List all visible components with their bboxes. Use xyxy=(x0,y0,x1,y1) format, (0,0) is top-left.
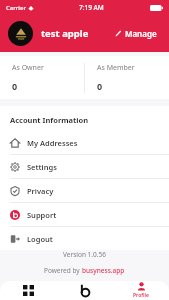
staticText: Support xyxy=(27,210,57,220)
staticText: 0 xyxy=(97,80,103,92)
button[interactable]: Dashboard xyxy=(0,281,57,300)
staticText: As Owner xyxy=(12,63,44,73)
button[interactable]: Support xyxy=(0,203,169,226)
staticText: 7:19 AM xyxy=(79,3,104,12)
button[interactable]: As Owner xyxy=(0,56,84,99)
staticText: Version 1.0.56 xyxy=(63,250,106,259)
staticText: Carrier xyxy=(6,4,26,12)
staticText: Privacy xyxy=(27,186,54,196)
staticText: Account Information xyxy=(10,115,89,125)
staticText: Settings xyxy=(27,162,57,172)
staticText: Profile xyxy=(133,292,149,299)
button[interactable]: Home xyxy=(57,281,113,300)
staticText: As Member xyxy=(97,63,135,73)
staticText: 0 xyxy=(12,80,18,92)
button[interactable]: My Addresses xyxy=(0,131,169,154)
staticText: Logout xyxy=(27,234,53,244)
button[interactable]: busyness.app xyxy=(82,266,125,275)
button[interactable]: Privacy xyxy=(0,179,169,202)
staticText: test apple xyxy=(41,27,89,40)
staticText: My Addresses xyxy=(27,138,78,148)
button[interactable]: Profile xyxy=(113,281,169,300)
staticText: Manage xyxy=(125,28,157,39)
staticText: busyness.app xyxy=(82,266,125,275)
button[interactable]: Logout xyxy=(0,227,169,250)
staticText: Powered by xyxy=(44,266,82,275)
button[interactable]: Manage xyxy=(111,25,161,42)
button[interactable]: As Member xyxy=(85,56,169,99)
button[interactable]: Settings xyxy=(0,155,169,178)
